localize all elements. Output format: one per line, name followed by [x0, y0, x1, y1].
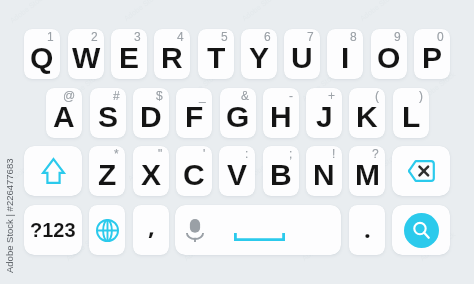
staticText: - — [289, 89, 293, 102]
staticText: A — [53, 100, 75, 134]
staticText: 2 — [91, 30, 98, 43]
staticText: D — [140, 100, 162, 134]
staticText: ? — [372, 147, 379, 160]
staticText: U — [291, 41, 313, 75]
button[interactable]: O — [371, 29, 407, 79]
button[interactable]: Symbols — [24, 205, 82, 255]
staticText: X — [141, 158, 162, 192]
button[interactable]: Shift — [24, 146, 82, 196]
staticText: Adobe Stock — [300, 230, 339, 262]
staticText: E — [119, 41, 140, 75]
staticText: , — [148, 209, 155, 242]
button[interactable]: F — [176, 88, 212, 138]
staticText: W — [72, 41, 101, 75]
button[interactable]: V — [219, 146, 255, 196]
staticText: B — [270, 158, 292, 192]
staticText: Adobe Stock — [64, 230, 103, 262]
staticText: Adobe Stock | #226477683 — [4, 158, 15, 273]
staticText: . — [364, 212, 371, 245]
staticText: T — [207, 41, 226, 75]
staticText: J — [316, 100, 333, 134]
staticText: : — [245, 147, 249, 160]
button[interactable]: G — [220, 88, 256, 138]
staticText: # — [113, 89, 120, 102]
button[interactable]: Q — [24, 29, 60, 79]
button[interactable]: I — [327, 29, 363, 79]
staticText: 5 — [221, 30, 228, 43]
button[interactable]: U — [284, 29, 320, 79]
button[interactable]: B — [263, 146, 299, 196]
staticText: Adobe Stock — [64, 70, 103, 102]
button[interactable]: D — [133, 88, 169, 138]
staticText: Adobe Stock — [418, 70, 457, 102]
button[interactable]: X — [133, 146, 169, 196]
staticText: * — [114, 147, 119, 160]
staticText: 9 — [394, 30, 401, 43]
staticText: ' — [203, 147, 206, 160]
staticText: Adobe Stock — [8, 150, 47, 182]
staticText: ; — [289, 147, 293, 160]
staticText: C — [183, 158, 205, 192]
staticText: Adobe Stock — [126, 150, 165, 182]
button[interactable]: C — [176, 146, 212, 196]
button[interactable]: J — [306, 88, 342, 138]
staticText: 6 — [264, 30, 271, 43]
staticText: @ — [63, 89, 76, 102]
staticText: Adobe Stock — [362, 150, 401, 182]
staticText: 7 — [307, 30, 314, 43]
button[interactable]: T — [198, 29, 234, 79]
staticText: Adobe Stock — [182, 70, 221, 102]
staticText: 4 — [177, 30, 184, 43]
button[interactable]: Space — [175, 205, 341, 255]
button[interactable]: H — [263, 88, 299, 138]
button[interactable]: A — [46, 88, 82, 138]
staticText: ) — [419, 89, 423, 102]
staticText: G — [226, 100, 250, 134]
button[interactable]: Change language — [89, 205, 125, 255]
staticText: H — [270, 100, 292, 134]
button[interactable]: E — [111, 29, 147, 79]
button[interactable]: Z — [89, 146, 125, 196]
staticText: Adobe Stock — [418, 230, 457, 262]
staticText: I — [341, 41, 350, 75]
button[interactable]: P — [414, 29, 450, 79]
staticText: F — [185, 100, 204, 134]
button[interactable]: M — [349, 146, 385, 196]
staticText: Q — [30, 41, 54, 75]
staticText: Adobe Stock — [244, 150, 283, 182]
button[interactable]: R — [154, 29, 190, 79]
button[interactable]: Y — [241, 29, 277, 79]
staticText: N — [313, 158, 335, 192]
staticText: 0 — [437, 30, 444, 43]
staticText: R — [161, 41, 183, 75]
staticText: + — [328, 89, 336, 102]
staticText: 1 — [47, 30, 54, 43]
staticText: S — [98, 100, 119, 134]
staticText: Z — [98, 158, 117, 192]
button[interactable]: S — [90, 88, 126, 138]
staticText: ( — [375, 89, 379, 102]
button[interactable]: Period — [349, 205, 385, 255]
staticText: 8 — [350, 30, 357, 43]
staticText: P — [422, 41, 443, 75]
button[interactable]: Search — [392, 205, 450, 255]
button[interactable]: N — [306, 146, 342, 196]
staticText: Y — [249, 41, 270, 75]
staticText: Adobe Stock — [182, 230, 221, 262]
button[interactable]: L — [393, 88, 429, 138]
staticText: Adobe Stock — [300, 70, 339, 102]
staticText: M — [355, 158, 380, 192]
staticText: 3 — [134, 30, 141, 43]
staticText: ?123 — [30, 219, 76, 241]
staticText: " — [158, 147, 163, 160]
button[interactable]: K — [349, 88, 385, 138]
button[interactable]: Backspace — [392, 146, 450, 196]
staticText: L — [402, 100, 421, 134]
button[interactable]: W — [68, 29, 104, 79]
button[interactable]: Comma — [133, 205, 169, 255]
staticText: & — [241, 89, 250, 102]
